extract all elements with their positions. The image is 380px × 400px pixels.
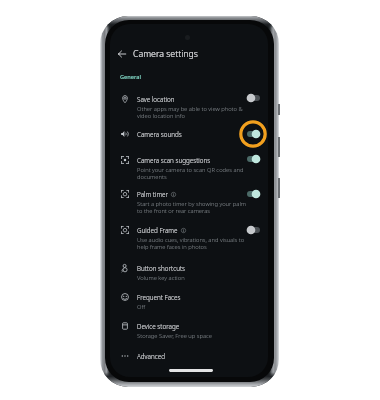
staticText: General [120,73,141,81]
button[interactable]: Palm timer [110,186,268,212]
staticText: Save location [137,95,175,104]
staticText: Camera sounds [137,130,182,139]
staticText: Storage Saver, Free up space [137,332,213,340]
button[interactable]: Device storage [110,318,268,337]
button[interactable]: Toggle Camera scan suggestions [239,145,267,173]
staticText: Off [137,303,146,311]
button[interactable]: Save location [110,91,268,117]
staticText: Camera scan suggestions [137,156,211,165]
button[interactable]: Toggle Save location [239,84,267,112]
button[interactable]: Toggle Camera sounds [239,120,267,148]
button[interactable]: Button shortcuts [110,260,268,279]
staticText: Other apps may be able to view photo & v… [137,105,243,120]
button[interactable]: Guided Frame [110,222,268,248]
staticText: Point your camera to scan QR codes and d… [137,166,244,181]
button[interactable]: Camera scan suggestions [110,152,268,178]
staticText: Button shortcuts [137,264,185,273]
staticText: Advanced [137,352,165,361]
button[interactable]: Camera sounds [110,126,268,138]
staticText: Device storage [137,322,180,331]
staticText: Palm timer [137,190,168,199]
staticText: Camera settings [133,48,198,60]
button[interactable]: Back [115,47,129,61]
staticText: Use audio cues, vibrations, and visuals … [137,236,245,251]
button[interactable]: Advanced [110,348,268,360]
button[interactable]: Toggle Guided Frame [239,216,267,244]
button[interactable]: Toggle Palm timer [239,180,267,208]
staticText: Frequent Faces [137,293,181,302]
button[interactable]: Frequent Faces [110,289,268,308]
staticText: Guided Frame [137,226,178,235]
staticText: Volume key action [137,274,185,282]
staticText: Start a photo timer by showing your palm… [137,200,246,215]
